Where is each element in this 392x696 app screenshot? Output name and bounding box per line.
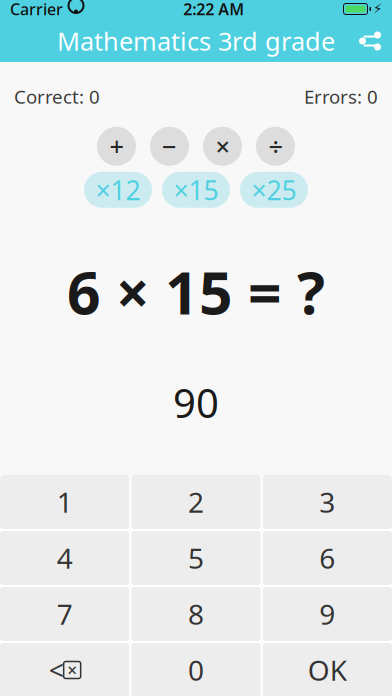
staticText: ×15 <box>173 172 218 207</box>
staticText: 2:22 AM <box>183 0 244 20</box>
button[interactable]: ÷ <box>256 127 295 166</box>
button[interactable]: Delete <box>0 643 129 696</box>
staticText: < <box>49 652 64 688</box>
staticText: 7 <box>57 595 73 633</box>
button[interactable]: − <box>150 127 189 166</box>
button[interactable]: OK <box>263 643 392 696</box>
button[interactable]: 0 <box>131 643 261 696</box>
staticText: 2 <box>188 483 204 521</box>
button[interactable]: ×25 <box>240 172 308 208</box>
staticText: 9 <box>319 595 335 633</box>
button[interactable]: 7 <box>0 587 129 641</box>
button[interactable]: 4 <box>0 531 129 585</box>
button[interactable]: 9 <box>263 587 392 641</box>
staticText: ÷ <box>268 129 282 163</box>
staticText: 6 × 15 = ? <box>67 253 325 331</box>
staticText: ×25 <box>251 172 296 207</box>
button[interactable]: × <box>203 127 242 166</box>
staticText: 4 <box>57 539 73 577</box>
staticText: × <box>67 658 77 681</box>
staticText: Errors: 0 <box>304 84 378 109</box>
staticText: 5 <box>188 539 204 577</box>
button[interactable]: ×15 <box>162 172 230 208</box>
staticText: Carrier <box>10 0 63 20</box>
button[interactable]: 3 <box>263 475 392 529</box>
button[interactable]: + <box>97 127 136 166</box>
staticText: × <box>215 129 229 163</box>
staticText: 1 <box>57 483 73 521</box>
staticText: OK <box>308 651 347 689</box>
staticText: ×12 <box>95 172 140 207</box>
button[interactable]: 6 <box>263 531 392 585</box>
staticText: 3 <box>319 483 335 521</box>
staticText: ⚡︎ <box>373 1 382 16</box>
button[interactable]: 2 <box>131 475 261 529</box>
staticText: 8 <box>188 595 204 633</box>
staticText: + <box>109 129 123 163</box>
staticText: Correct: 0 <box>14 84 100 109</box>
staticText: 90 <box>173 376 219 429</box>
staticText: − <box>162 129 177 163</box>
staticText: 6 <box>319 539 335 577</box>
staticText: Mathematics 3rd grade <box>57 24 335 58</box>
staticText: 0 <box>188 651 204 689</box>
button[interactable]: ×12 <box>84 172 152 208</box>
button[interactable]: Share <box>348 20 392 62</box>
button[interactable]: 1 <box>0 475 129 529</box>
button[interactable]: 8 <box>131 587 261 641</box>
button[interactable]: 5 <box>131 531 261 585</box>
